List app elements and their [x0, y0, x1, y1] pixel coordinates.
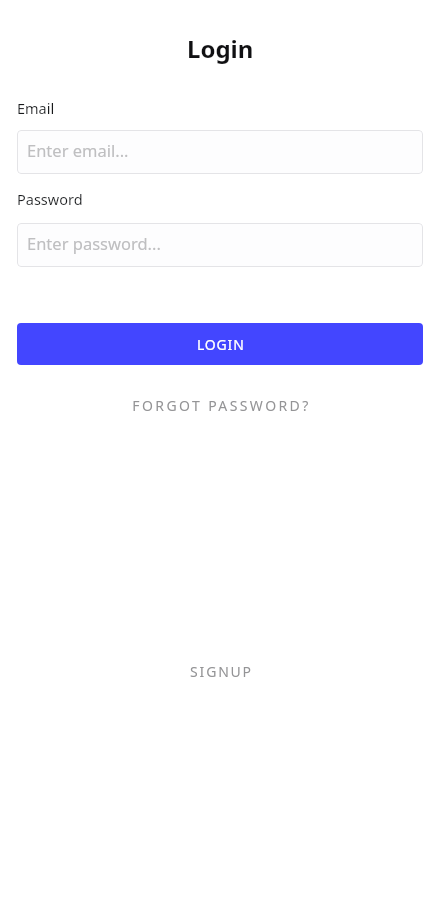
staticText: Password [17, 189, 83, 209]
staticText: Enter password... [27, 232, 161, 254]
staticText: Email [17, 98, 55, 118]
button[interactable]: Enter password... [17, 223, 423, 267]
staticText: Login [187, 32, 254, 65]
staticText: FORGOT PASSWORD? [132, 396, 311, 415]
button[interactable]: SIGNUP [169, 650, 272, 693]
button[interactable]: FORGOT PASSWORD? [117, 384, 324, 427]
staticText: LOGIN [197, 335, 245, 354]
staticText: Enter email... [27, 139, 129, 161]
button[interactable]: Enter email... [17, 130, 423, 174]
staticText: SIGNUP [190, 662, 253, 681]
button[interactable]: LOGIN [17, 323, 423, 365]
